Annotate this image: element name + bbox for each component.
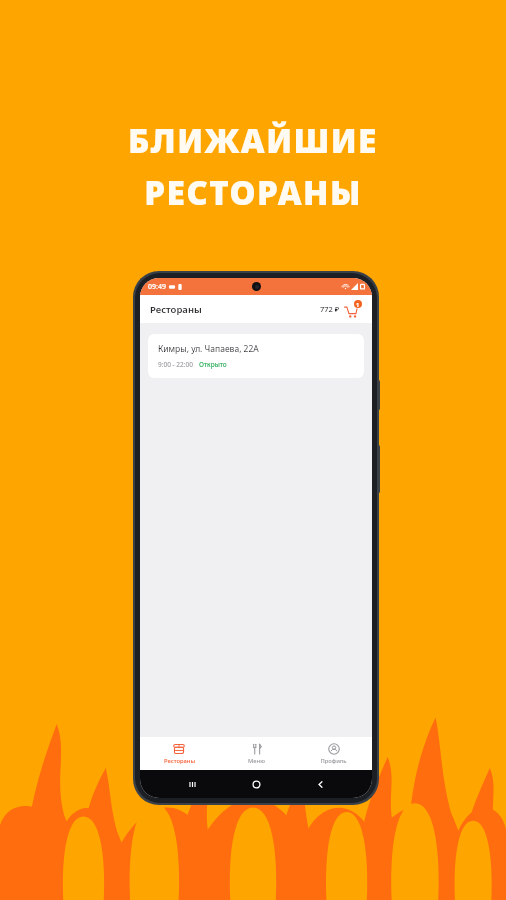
staticText: РЕСТОРАНЫ xyxy=(144,170,362,215)
button[interactable]: Профиль xyxy=(295,737,372,770)
button[interactable]: Главный экран xyxy=(244,772,268,796)
staticText: 1 xyxy=(356,301,360,308)
staticText: БЛИЖАЙШИЕ xyxy=(128,118,378,163)
button[interactable]: Назад xyxy=(308,772,332,796)
staticText: 09:49 xyxy=(148,282,166,292)
button[interactable]: Рестораны xyxy=(140,737,218,770)
button[interactable]: Меню xyxy=(218,737,295,770)
button[interactable]: Недавние приложения xyxy=(180,772,204,796)
staticText: Рестораны xyxy=(164,757,195,765)
button[interactable]: Кимры, ул. Чапаева, 22А xyxy=(148,334,364,378)
staticText: Меню xyxy=(248,757,265,765)
staticText: Открыто xyxy=(199,360,227,369)
staticText: Рестораны xyxy=(150,303,202,316)
staticText: Кимры, ул. Чапаева, 22А xyxy=(158,343,259,355)
button[interactable]: Корзина xyxy=(344,300,362,318)
staticText: 9:00 - 22:00 xyxy=(158,360,193,369)
staticText: Профиль xyxy=(320,757,347,765)
staticText: 772 ₽ xyxy=(320,304,340,314)
